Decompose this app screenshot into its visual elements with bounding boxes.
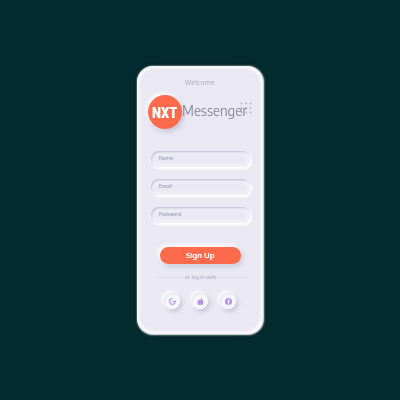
staticText: Email [159,183,172,190]
staticText: Welcome [137,78,263,87]
button[interactable]: Google [164,293,180,309]
button[interactable]: Facebook [220,293,236,309]
staticText: Password [159,211,182,218]
button[interactable]: Password [151,207,250,223]
staticText: Messenger [182,102,248,119]
button[interactable]: Email [151,179,250,195]
button[interactable]: Name [151,151,250,167]
button[interactable]: NXT logo [148,95,182,129]
staticText: Sign Up [186,250,215,261]
button[interactable]: Sign Up [160,247,241,264]
staticText: NXT [152,104,178,121]
button[interactable]: Apple [192,293,208,309]
staticText: Name [159,155,173,162]
staticText: or log in with [185,274,217,281]
